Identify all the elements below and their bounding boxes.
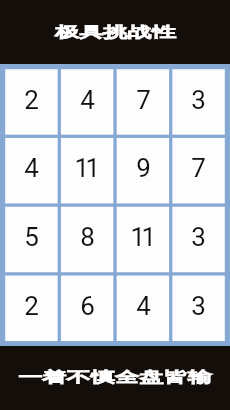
staticText: 11: [74, 153, 97, 183]
button[interactable]: 11: [117, 207, 169, 272]
button[interactable]: 5: [5, 207, 57, 272]
button[interactable]: 3: [172, 276, 224, 341]
button[interactable]: 2: [5, 276, 57, 341]
button[interactable]: 6: [61, 276, 113, 341]
staticText: 极具挑战性: [54, 23, 176, 41]
staticText: 4: [24, 153, 39, 183]
staticText: 7: [136, 85, 151, 115]
button[interactable]: 2: [5, 70, 57, 135]
button[interactable]: 一着不慎全盘皆输: [0, 347, 230, 410]
staticText: 一着不慎全盘皆输: [18, 368, 212, 386]
button[interactable]: 极具挑战性: [0, 0, 230, 64]
staticText: 3: [191, 222, 206, 252]
button[interactable]: 9: [117, 138, 169, 203]
button[interactable]: 7: [117, 70, 169, 135]
staticText: 11: [130, 222, 153, 252]
staticText: 6: [80, 291, 95, 321]
staticText: 4: [80, 85, 95, 115]
button[interactable]: 4: [61, 70, 113, 135]
staticText: 8: [80, 222, 95, 252]
button[interactable]: 7: [172, 138, 224, 203]
button[interactable]: 11: [61, 138, 113, 203]
staticText: 3: [191, 291, 206, 321]
staticText: 5: [24, 222, 39, 252]
staticText: 7: [191, 153, 206, 183]
staticText: 9: [136, 153, 151, 183]
staticText: 4: [136, 291, 151, 321]
staticText: 2: [24, 291, 39, 321]
button[interactable]: 3: [172, 207, 224, 272]
button[interactable]: 4: [5, 138, 57, 203]
button[interactable]: 8: [61, 207, 113, 272]
staticText: 2: [24, 85, 39, 115]
button[interactable]: 4: [117, 276, 169, 341]
staticText: 3: [191, 85, 206, 115]
button[interactable]: 3: [172, 70, 224, 135]
